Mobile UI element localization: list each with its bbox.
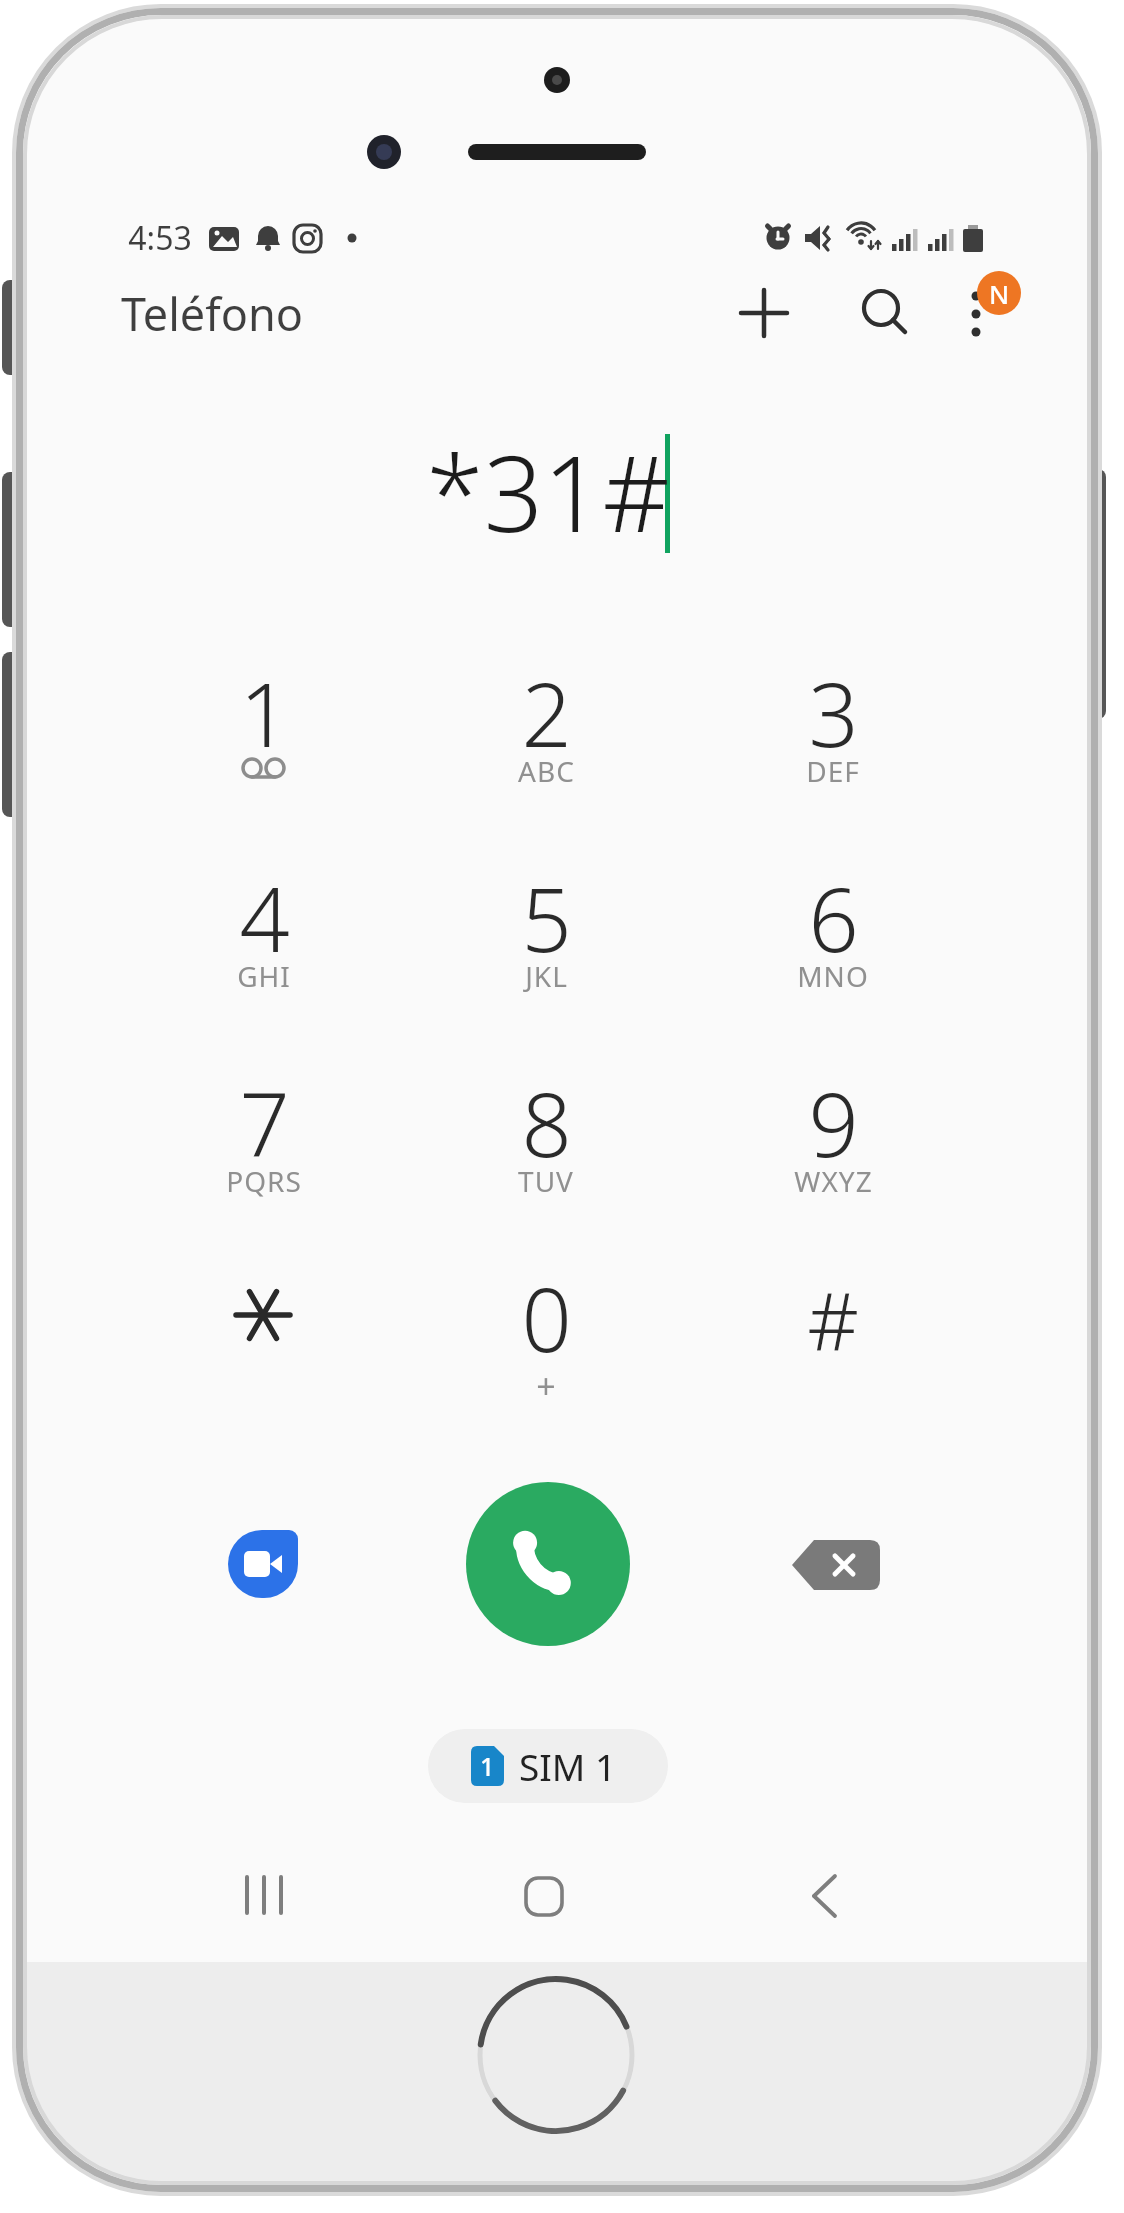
button[interactable]	[159, 843, 369, 1018]
button[interactable]	[441, 1048, 651, 1223]
button[interactable]	[159, 1048, 369, 1223]
staticText: +	[536, 1363, 556, 1409]
button[interactable]	[441, 1243, 651, 1418]
staticText: 0	[521, 1258, 572, 1378]
staticText: N	[989, 276, 1010, 311]
button[interactable]	[159, 1243, 369, 1418]
button[interactable]	[728, 1048, 938, 1223]
staticText: Teléfono	[121, 283, 303, 344]
staticText: *31#	[426, 421, 670, 563]
staticText: 2	[521, 653, 572, 773]
button[interactable]	[792, 1538, 880, 1592]
staticText: PQRS	[226, 1162, 302, 1200]
button[interactable]	[946, 268, 1026, 348]
staticText: WXYZ	[794, 1162, 873, 1200]
button[interactable]	[851, 278, 917, 344]
staticText: ABC	[518, 752, 575, 790]
staticText: SIM 1	[519, 1741, 617, 1791]
staticText: 9	[808, 1063, 859, 1183]
button[interactable]	[728, 638, 938, 813]
button[interactable]	[728, 1243, 938, 1418]
staticText: 1	[239, 653, 290, 773]
staticText: DEF	[806, 752, 860, 790]
button[interactable]	[731, 280, 797, 346]
button[interactable]	[201, 1840, 331, 1950]
staticText: 4	[239, 858, 290, 978]
staticText: GHI	[237, 957, 291, 995]
staticText: 5	[521, 858, 572, 978]
staticText: 6	[808, 858, 859, 978]
button[interactable]	[159, 638, 369, 813]
staticText: 7	[239, 1063, 290, 1183]
staticText: 4:53	[128, 216, 192, 260]
staticText: 3	[808, 653, 859, 773]
staticText: 1	[480, 1749, 495, 1783]
staticText: JKL	[525, 957, 568, 995]
staticText: 8	[521, 1063, 572, 1183]
button[interactable]: 1	[428, 1729, 668, 1803]
button[interactable]	[751, 1840, 881, 1950]
staticText: MNO	[797, 957, 869, 995]
button[interactable]	[441, 638, 651, 813]
button[interactable]	[728, 843, 938, 1018]
button[interactable]	[466, 1482, 630, 1646]
button[interactable]	[441, 843, 651, 1018]
staticText: TUV	[518, 1162, 574, 1200]
button[interactable]	[228, 1529, 298, 1599]
staticText: #	[807, 1264, 859, 1373]
button[interactable]	[481, 1840, 611, 1950]
